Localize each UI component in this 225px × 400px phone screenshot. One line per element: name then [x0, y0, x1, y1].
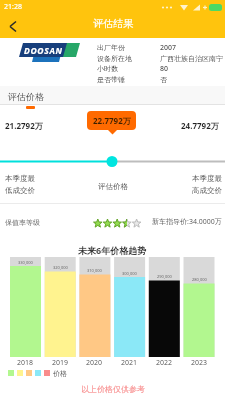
staticText: 2022 — [156, 358, 173, 368]
staticText: 280,000 — [192, 277, 207, 282]
staticText: 310,000 — [87, 268, 102, 273]
staticText: 290,000 — [157, 274, 172, 279]
button[interactable]: 2023 — [184, 358, 215, 368]
staticText: 300,000 — [122, 271, 137, 276]
staticText: 保值率等级 — [5, 218, 40, 227]
staticText: 24.7792万 — [181, 120, 219, 131]
staticText: 否 — [160, 75, 167, 84]
button[interactable]: 22.7792万 — [87, 111, 136, 130]
button[interactable] — [0, 14, 26, 38]
staticText: 2019 — [52, 358, 69, 368]
button[interactable]: 2020 — [79, 358, 110, 368]
button[interactable] — [0, 213, 225, 233]
staticText: 价格 — [53, 369, 67, 378]
staticText: 2007 — [160, 43, 177, 53]
staticText: 小时数 — [97, 64, 118, 73]
staticText: 2020 — [86, 358, 103, 368]
staticText: 22.7792万 — [93, 115, 131, 126]
staticText: 以上价格仅供参考 — [81, 384, 145, 394]
staticText: 80 — [160, 64, 169, 74]
staticText: DOOSAN — [24, 45, 63, 57]
staticText: 330,000 — [18, 260, 33, 265]
staticText: 新车指导价:34.0000万 — [152, 217, 222, 227]
staticText: 320,000 — [53, 265, 68, 270]
staticText: 21.2792万 — [5, 120, 43, 131]
staticText: 评估价格 — [98, 182, 128, 191]
staticText: 未来6年价格趋势 — [78, 244, 147, 256]
staticText: 本季度最 低成交价 — [5, 174, 35, 195]
staticText: 本季度最 高成交价 — [192, 174, 222, 195]
button[interactable]: 2021 — [114, 358, 145, 368]
staticText: 2021 — [121, 358, 138, 368]
staticText: 出厂年份 — [97, 43, 125, 52]
button[interactable]: 2019 — [45, 358, 76, 368]
staticText: 2018 — [17, 358, 34, 368]
button[interactable]: 2018 — [10, 358, 41, 368]
button[interactable]: 2022 — [149, 358, 180, 368]
button[interactable] — [0, 86, 225, 105]
staticText: 设备所在地 — [97, 54, 132, 63]
staticText: 广西壮族自治区南宁 — [160, 54, 223, 63]
staticText: 评估价格 — [8, 91, 44, 102]
staticText: 21:28 — [4, 2, 22, 12]
staticText: 2023 — [191, 358, 208, 368]
staticText: 评估结果 — [93, 17, 133, 30]
staticText: 是否带锤 — [97, 75, 125, 84]
